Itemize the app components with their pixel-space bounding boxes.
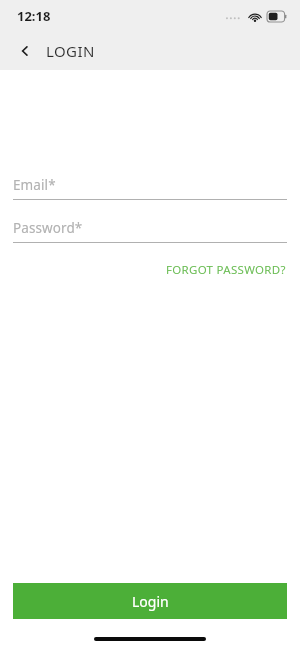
button[interactable]: Email* [0, 171, 300, 200]
staticText: Password* [13, 219, 83, 237]
staticText: Email* [13, 176, 56, 194]
button[interactable]: Login [13, 583, 287, 619]
button[interactable]: Back [9, 35, 41, 67]
staticText: 12:18 [17, 7, 51, 25]
button[interactable]: FORGOT PASSWORD? [165, 259, 287, 281]
staticText: Login [132, 592, 169, 611]
staticText: FORGOT PASSWORD? [166, 262, 286, 278]
staticText: LOGIN [46, 41, 95, 61]
button[interactable]: Password* [0, 214, 300, 243]
